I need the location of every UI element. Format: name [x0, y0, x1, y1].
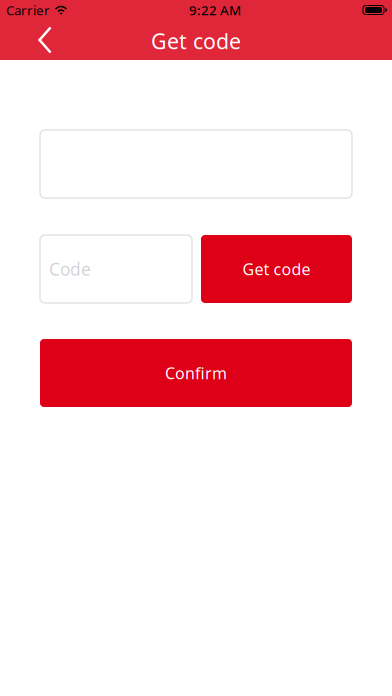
button[interactable]: Back — [0, 20, 64, 60]
staticText: Code — [49, 257, 91, 280]
button[interactable]: Code — [40, 235, 192, 303]
button[interactable]: Confirm — [40, 339, 352, 407]
staticText: Get code — [242, 258, 310, 280]
staticText: Get code — [151, 27, 241, 55]
staticText: Carrier — [6, 1, 50, 19]
button[interactable]: Get code — [201, 235, 352, 303]
staticText: Confirm — [165, 362, 227, 384]
staticText: 9:22 AM — [189, 1, 241, 19]
button[interactable]: Phone number — [40, 130, 352, 198]
